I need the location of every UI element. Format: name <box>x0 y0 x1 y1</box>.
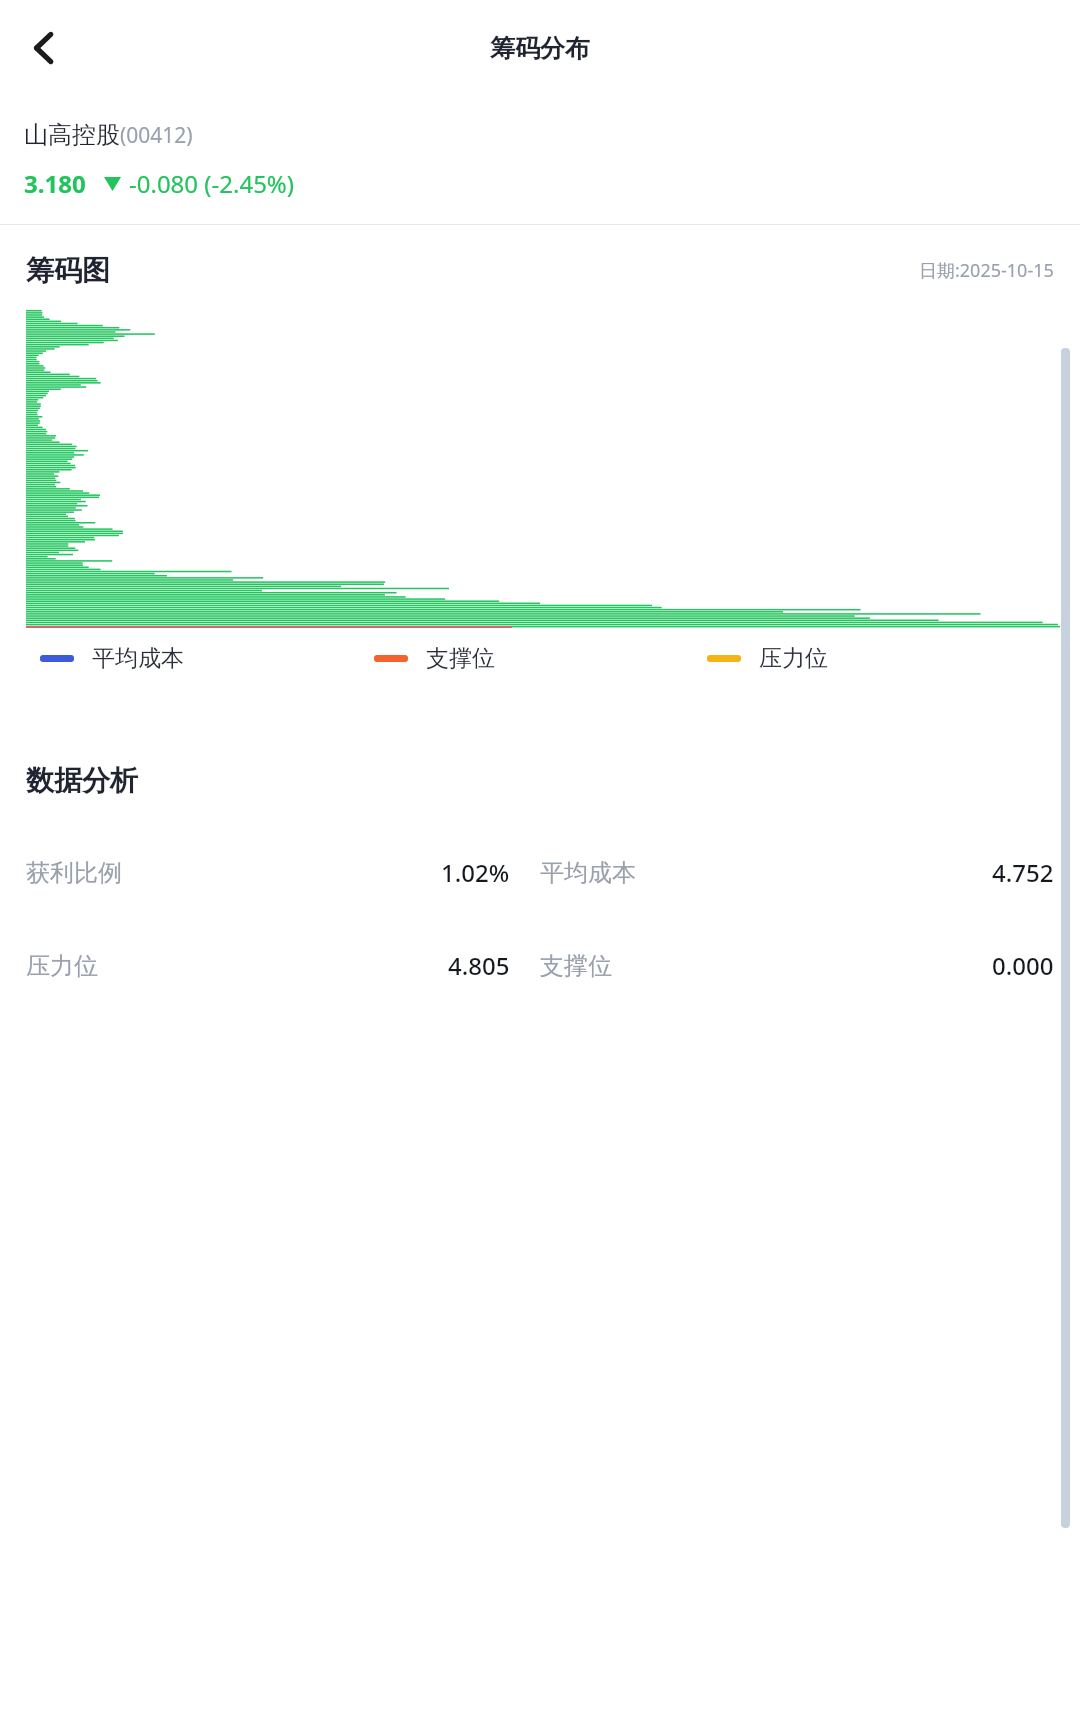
staticText: -0.080 (-2.45%) <box>129 167 294 200</box>
staticText: 3.180 <box>24 167 86 200</box>
staticText: 筹码图 <box>26 253 110 288</box>
button[interactable]: 支撑位 <box>374 644 707 673</box>
staticText: 4.752 <box>992 856 1054 889</box>
staticText: 0.000 <box>992 949 1054 982</box>
staticText: 平均成本 <box>540 858 636 888</box>
staticText: 支撑位 <box>426 644 495 673</box>
staticText: 1.02% <box>441 856 510 889</box>
staticText: 平均成本 <box>92 644 184 673</box>
button[interactable]: Back <box>0 4 88 92</box>
staticText: 4.805 <box>448 949 510 982</box>
staticText: 日期:2025-10-15 <box>919 258 1054 283</box>
button[interactable]: 平均成本 <box>40 644 374 673</box>
staticText: (00412) <box>120 121 193 150</box>
staticText: 压力位 <box>26 951 98 981</box>
staticText: 压力位 <box>759 644 828 673</box>
staticText: 山高控股 <box>24 120 120 150</box>
staticText: 获利比例 <box>26 858 122 888</box>
staticText: 支撑位 <box>540 951 612 981</box>
staticText: 数据分析 <box>26 763 138 798</box>
staticText: 筹码分布 <box>490 33 590 64</box>
button[interactable]: 压力位 <box>707 644 1040 673</box>
